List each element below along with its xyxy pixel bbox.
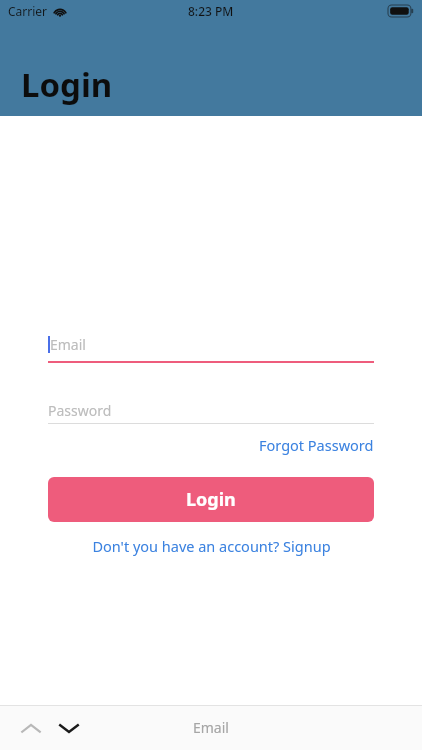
staticText: Carrier — [8, 3, 48, 19]
button[interactable]: Previous field — [16, 713, 46, 743]
button[interactable]: Password — [48, 396, 374, 424]
staticText: Login — [186, 487, 236, 512]
button[interactable]: Don't you have an account? Signup — [92, 534, 331, 558]
staticText: 8:23 PM — [188, 3, 234, 19]
button[interactable]: Login — [48, 477, 374, 522]
staticText: Login — [21, 62, 113, 107]
staticText: Email — [193, 718, 229, 737]
button[interactable]: Next field — [54, 713, 84, 743]
staticText: Forgot Password — [259, 435, 374, 455]
staticText: Don't you have an account? Signup — [92, 536, 331, 556]
staticText: Password — [48, 401, 112, 420]
button[interactable]: Email — [48, 335, 374, 363]
button[interactable]: Forgot Password — [259, 432, 374, 458]
staticText: Email — [50, 335, 86, 354]
